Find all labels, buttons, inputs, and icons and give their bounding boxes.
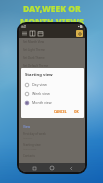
button[interactable]: CANCEL [52,109,69,115]
staticText: Contacts [23,154,35,158]
button[interactable]: OK [72,109,81,115]
staticText: First day of week [23,132,46,136]
staticText: Set Month View [23,40,45,44]
staticText: Week view [32,91,50,96]
button[interactable]: Grid view [29,30,36,37]
staticText: 9:41 [21,25,27,29]
staticText: Starting view [25,72,53,78]
staticText: Day view [32,82,47,87]
button[interactable]: Back [67,164,75,172]
staticText: DAY,WEEK OR [23,3,81,15]
staticText: OK [74,110,79,114]
button[interactable]: Calendar [37,30,44,37]
staticText: Set Light Theme [23,48,45,52]
staticText: Set Dark Theme [23,56,45,60]
button[interactable]: Month view [25,100,81,105]
staticText: Month view [32,100,52,105]
staticText: MONTH VIEWS [20,16,84,28]
button[interactable]: Week view [25,91,81,96]
button[interactable]: Home [48,164,56,172]
staticText: View [23,125,31,129]
button[interactable]: Recents [30,164,38,172]
staticText: CANCEL [54,110,67,114]
button[interactable]: Menu [21,30,28,37]
button[interactable]: Day view [25,82,81,87]
button[interactable]: Settings [76,30,83,37]
staticText: Set Default Theme [23,64,49,68]
staticText: Starting view [23,143,41,147]
